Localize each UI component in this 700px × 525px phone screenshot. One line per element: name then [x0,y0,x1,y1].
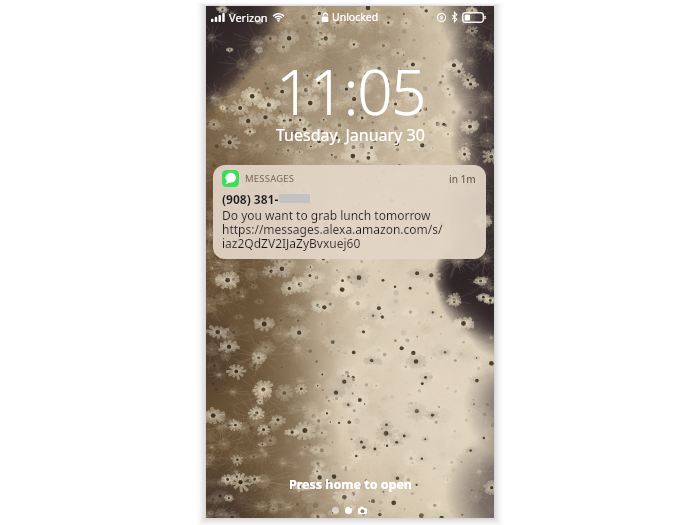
button[interactable]: MESSAGES [213,165,486,259]
staticText: Do you want to grab lunch tomorrow https… [222,207,443,251]
staticText: Unlocked [332,10,379,24]
button[interactable]: Page 1 [332,507,339,514]
button[interactable]: Page 2 [345,507,352,514]
staticText: (908) 381- [222,191,279,207]
button[interactable]: Camera [358,506,369,515]
staticText: in 1m [449,172,476,186]
staticText: Verizon [229,10,268,25]
staticText: MESSAGES [245,172,295,185]
staticText: 11:05 [276,49,425,133]
staticText: Press home to open [289,476,412,493]
staticText: Tuesday, January 30 [276,124,425,146]
